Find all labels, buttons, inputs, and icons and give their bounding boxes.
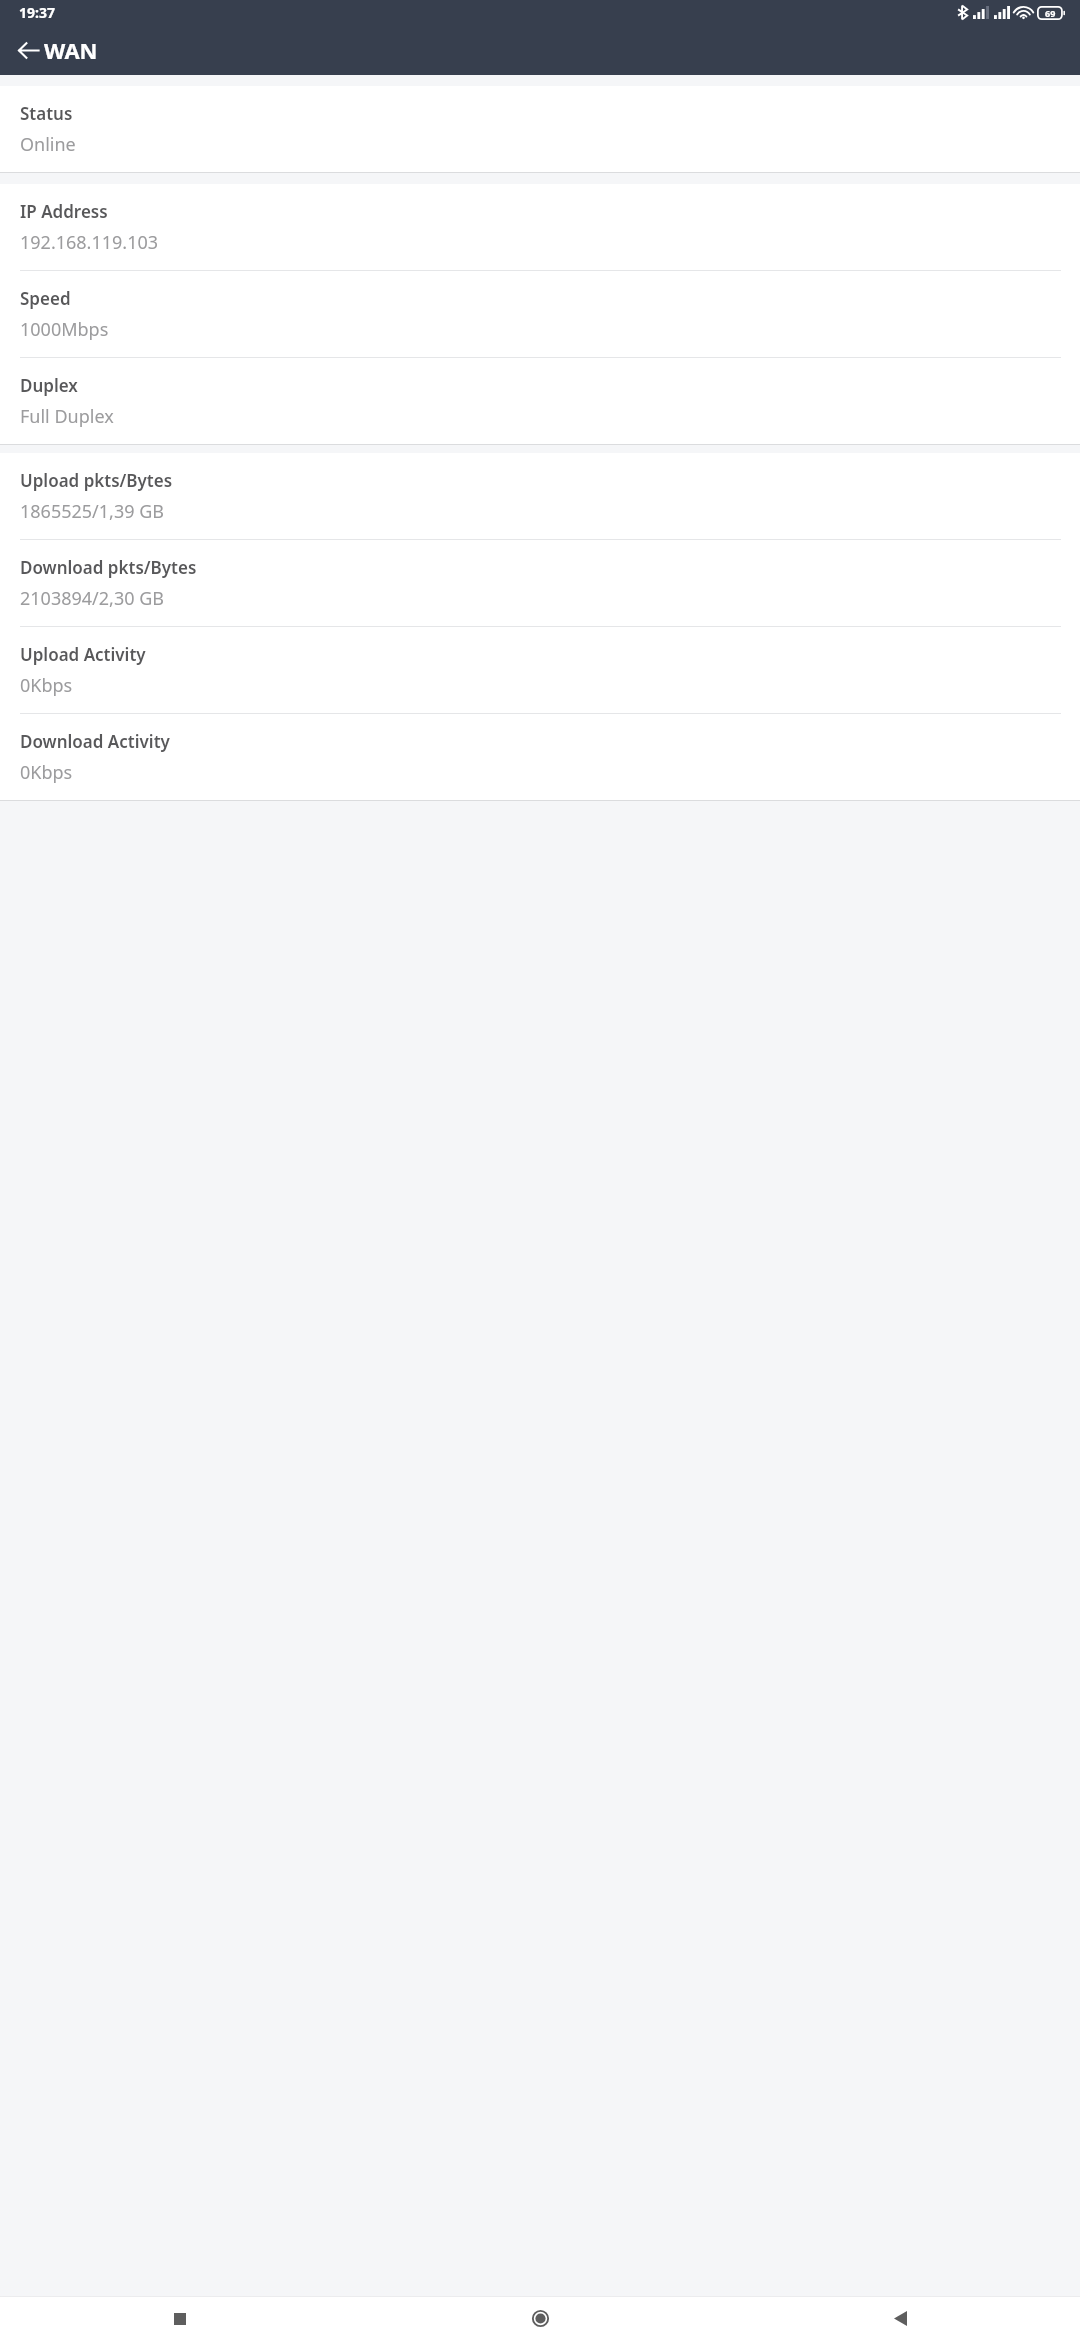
staticText: Status [20,102,73,125]
staticText: WAN [44,35,98,65]
staticText: 19:37 [19,3,55,22]
staticText: Speed [20,287,71,310]
button[interactable]: Upload pkts/Bytes [0,453,1080,539]
staticText: 1865525/1,39 GB [20,499,164,524]
button[interactable]: Status [0,86,1080,172]
staticText: 2103894/2,30 GB [20,586,164,611]
button[interactable]: Recent apps [0,2297,360,2340]
button[interactable]: Download pkts/Bytes [0,540,1080,626]
staticText: Full Duplex [20,404,114,429]
staticText: Download pkts/Bytes [20,556,197,579]
staticText: IP Address [20,200,108,223]
button[interactable]: Upload Activity [0,627,1080,713]
button[interactable]: IP Address [0,184,1080,270]
button[interactable]: Download Activity [0,714,1080,800]
button[interactable]: Back [3,25,53,75]
button[interactable]: Back [720,2297,1080,2340]
button[interactable]: Speed [0,271,1080,357]
staticText: 0Kbps [20,760,73,785]
staticText: Download Activity [20,730,170,753]
staticText: 192.168.119.103 [20,230,159,255]
staticText: 69 [1045,7,1056,19]
staticText: Duplex [20,374,78,397]
button[interactable]: Duplex [0,358,1080,444]
staticText: Online [20,132,76,157]
staticText: 1000Mbps [20,317,109,342]
staticText: Upload Activity [20,643,146,666]
staticText: Upload pkts/Bytes [20,469,173,492]
staticText: 0Kbps [20,673,73,698]
button[interactable]: Home [360,2297,720,2340]
